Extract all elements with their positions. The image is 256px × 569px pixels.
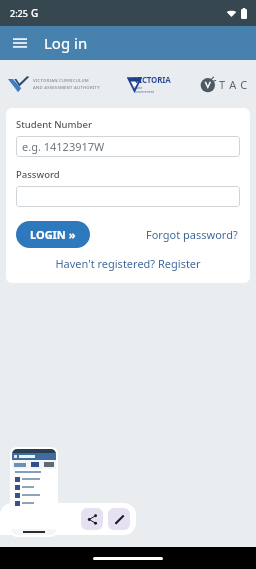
button[interactable]: Haven't registered? Register — [16, 256, 240, 271]
staticText: Password — [16, 168, 60, 181]
button[interactable]: e.g. 14123917W — [16, 136, 240, 157]
staticText: G — [31, 6, 39, 20]
staticText: AND ASSESSMENT AUTHORITY — [33, 85, 100, 91]
staticText: Haven't registered? Register — [55, 256, 201, 271]
staticText: VICTORIA — [134, 74, 171, 85]
button[interactable]: Share — [81, 508, 103, 530]
button[interactable]: Edit — [108, 508, 130, 530]
staticText: VICTORIAN CURRICULUM — [33, 78, 89, 84]
staticText: Log in — [44, 33, 88, 53]
staticText: Forgot password? — [146, 227, 238, 242]
button[interactable]: Open navigation menu — [6, 29, 34, 57]
staticText: 2:25 — [10, 7, 28, 19]
staticText: LOGIN » — [30, 227, 76, 242]
staticText: e.g. 14123917W — [22, 139, 105, 154]
button[interactable] — [16, 186, 240, 207]
staticText: T A C — [219, 77, 248, 92]
staticText: State Government — [134, 85, 154, 94]
staticText: Student Number — [16, 118, 92, 131]
button[interactable]: Screenshot preview — [10, 447, 58, 537]
button[interactable]: Forgot password? — [144, 224, 240, 245]
button[interactable]: LOGIN » — [16, 221, 90, 248]
